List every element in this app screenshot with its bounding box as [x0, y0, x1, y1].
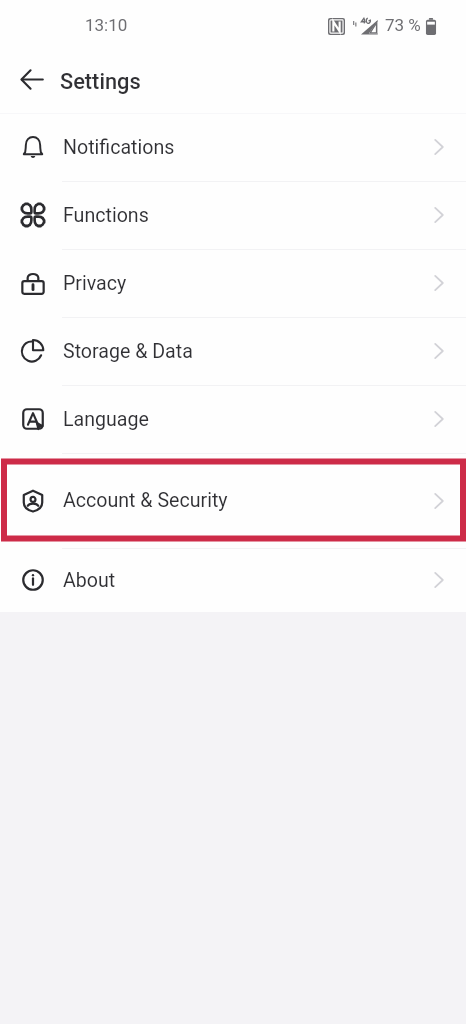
staticText: Functions	[63, 204, 149, 227]
staticText: 13:10	[85, 15, 128, 35]
staticText: Language	[63, 408, 149, 431]
button[interactable]: Account & Security	[0, 453, 466, 548]
staticText: 73 %	[385, 15, 421, 35]
staticText: Account & Security	[63, 489, 228, 512]
button[interactable]: Functions	[0, 181, 466, 249]
staticText: Notifications	[63, 136, 175, 159]
button[interactable]: Privacy	[0, 249, 466, 317]
staticText: About	[63, 569, 116, 592]
button[interactable]: Back	[8, 55, 56, 103]
staticText: Storage & Data	[63, 340, 193, 363]
button[interactable]: Notifications	[0, 113, 466, 181]
staticText: Privacy	[63, 272, 127, 295]
button[interactable]: About	[0, 548, 466, 612]
button[interactable]: Storage & Data	[0, 317, 466, 385]
button[interactable]: Language	[0, 385, 466, 453]
staticText: Settings	[60, 69, 141, 95]
